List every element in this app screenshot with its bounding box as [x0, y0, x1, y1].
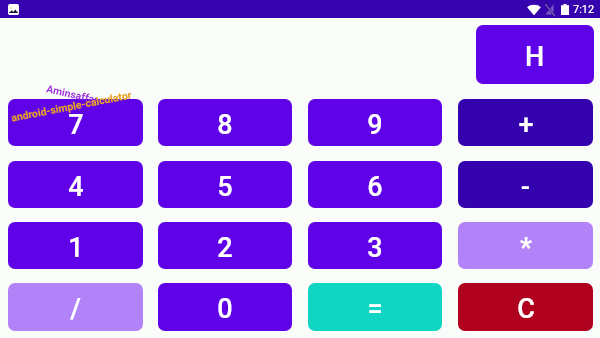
button[interactable]: C: [458, 283, 593, 331]
staticText: 8: [217, 109, 233, 141]
staticText: android-simple-calculator: [10, 88, 133, 124]
staticText: *: [520, 232, 532, 264]
staticText: 0: [217, 293, 233, 325]
staticText: =: [367, 293, 383, 325]
staticText: Aminsaffar: [45, 82, 100, 106]
button[interactable]: -: [458, 161, 593, 208]
other: Screenshot notification: [8, 4, 19, 15]
button[interactable]: /: [8, 283, 143, 331]
button[interactable]: *: [458, 222, 593, 269]
button[interactable]: 4: [8, 161, 143, 208]
staticText: 2: [217, 232, 233, 264]
button[interactable]: 9: [308, 99, 442, 146]
button[interactable]: 6: [308, 161, 442, 208]
staticText: 1: [68, 232, 84, 264]
staticText: C: [517, 293, 535, 325]
button[interactable]: 8: [158, 99, 292, 146]
staticText: 7:12: [573, 3, 595, 16]
staticText: -: [521, 171, 530, 203]
button[interactable]: 3: [308, 222, 442, 269]
staticText: 5: [217, 171, 233, 203]
staticText: 4: [68, 171, 84, 203]
button[interactable]: 7: [8, 99, 143, 146]
button[interactable]: 2: [158, 222, 292, 269]
button[interactable]: H: [476, 25, 594, 84]
staticText: H: [525, 41, 545, 73]
button[interactable]: +: [458, 99, 593, 146]
staticText: +: [518, 109, 534, 141]
staticText: /: [70, 293, 81, 325]
staticText: 9: [367, 109, 383, 141]
button[interactable]: 0: [158, 283, 292, 331]
staticText: 3: [367, 232, 383, 264]
button[interactable]: 1: [8, 222, 143, 269]
button[interactable]: =: [308, 283, 442, 331]
button[interactable]: 5: [158, 161, 292, 208]
staticText: 7: [68, 109, 84, 141]
staticText: 6: [367, 171, 383, 203]
